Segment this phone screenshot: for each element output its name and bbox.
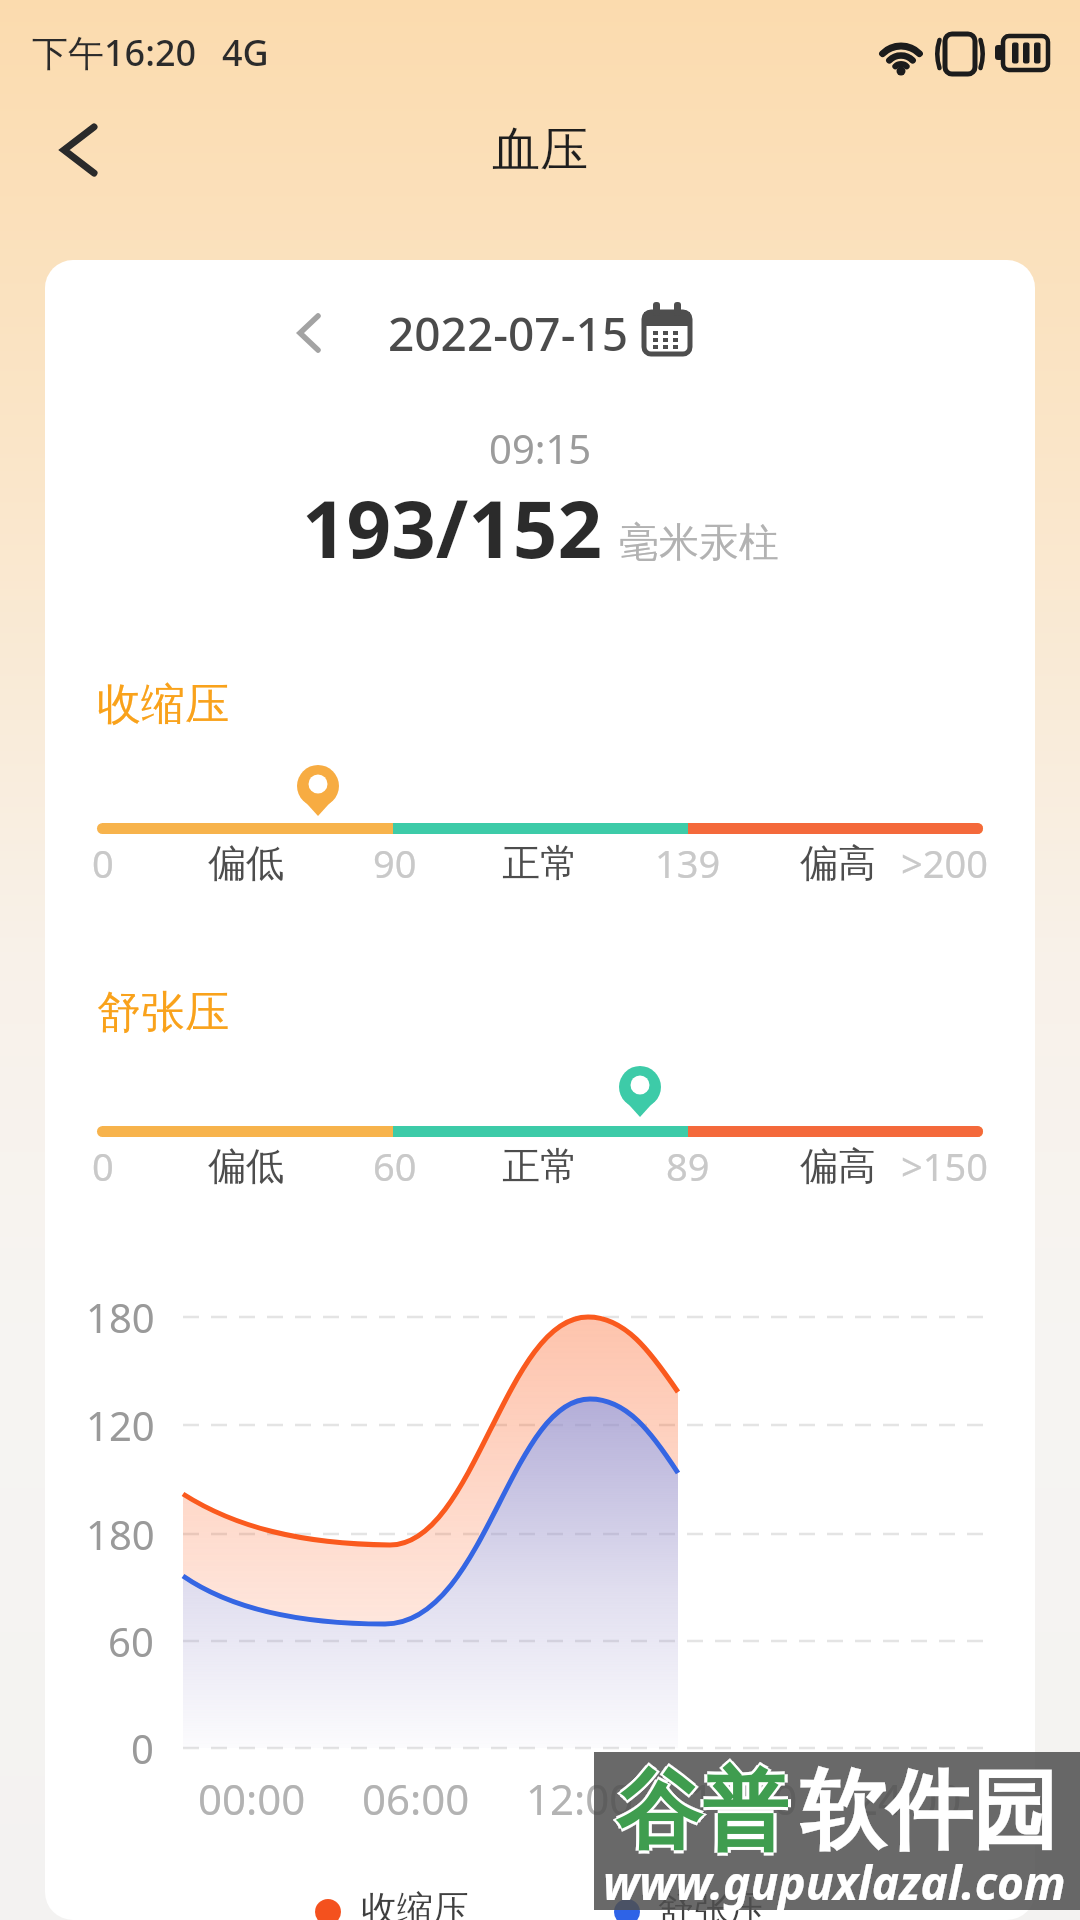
staticText: 谷普 — [616, 1757, 788, 1857]
staticText: 软件园 — [800, 1757, 1058, 1857]
staticText: 血压 — [492, 120, 588, 180]
staticText: 00:00 — [198, 1770, 306, 1827]
staticText: 正常 — [502, 839, 578, 887]
staticText: 193/152 — [302, 475, 603, 581]
staticText: 18:00 — [690, 1770, 798, 1827]
staticText: 毫米汞柱 — [619, 517, 779, 567]
staticText: 24:00 — [854, 1770, 962, 1827]
staticText: 12:00 — [526, 1770, 634, 1827]
staticText: 90 — [373, 837, 417, 889]
staticText: 正常 — [502, 1142, 578, 1190]
staticText: 180 — [86, 1290, 155, 1344]
staticText: 0 — [131, 1721, 154, 1775]
staticText: 谷普 — [619, 1757, 791, 1857]
staticText: 谷普 — [616, 1760, 788, 1860]
staticText: 2022-07-15 — [388, 302, 629, 365]
staticText: >150 — [901, 1140, 988, 1192]
staticText: 06:00 — [362, 1770, 470, 1827]
staticText: www.gupuxlazal.com — [603, 1851, 1066, 1914]
button[interactable] — [40, 110, 120, 190]
staticText: 收缩压 — [361, 1886, 469, 1920]
button[interactable] — [280, 300, 346, 366]
staticText: >200 — [901, 837, 988, 889]
staticText: 谷普 — [616, 1754, 788, 1854]
staticText: 偏低 — [208, 1142, 284, 1190]
staticText: 舒张压 — [97, 985, 229, 1040]
staticText: 139 — [655, 837, 721, 889]
staticText: 60 — [108, 1614, 154, 1668]
staticText: 0 — [92, 837, 114, 889]
staticText: 收缩压 — [97, 677, 229, 732]
staticText: 舒张压 — [658, 1886, 766, 1920]
staticText: 偏低 — [208, 839, 284, 887]
staticText: 89 — [666, 1140, 710, 1192]
staticText: 09:15 — [489, 421, 592, 475]
staticText: 120 — [86, 1398, 155, 1452]
staticText: 谷普 — [613, 1757, 785, 1857]
button[interactable]: 2022-07-15 — [208, 273, 808, 393]
button[interactable] — [640, 300, 696, 362]
staticText: 180 — [86, 1507, 155, 1561]
staticText: 4G — [222, 28, 269, 77]
staticText: 60 — [373, 1140, 417, 1192]
staticText: 0 — [92, 1140, 114, 1192]
staticText: 偏高 — [800, 839, 876, 887]
staticText: 下午16:20 — [32, 28, 197, 77]
staticText: 偏高 — [800, 1142, 876, 1190]
